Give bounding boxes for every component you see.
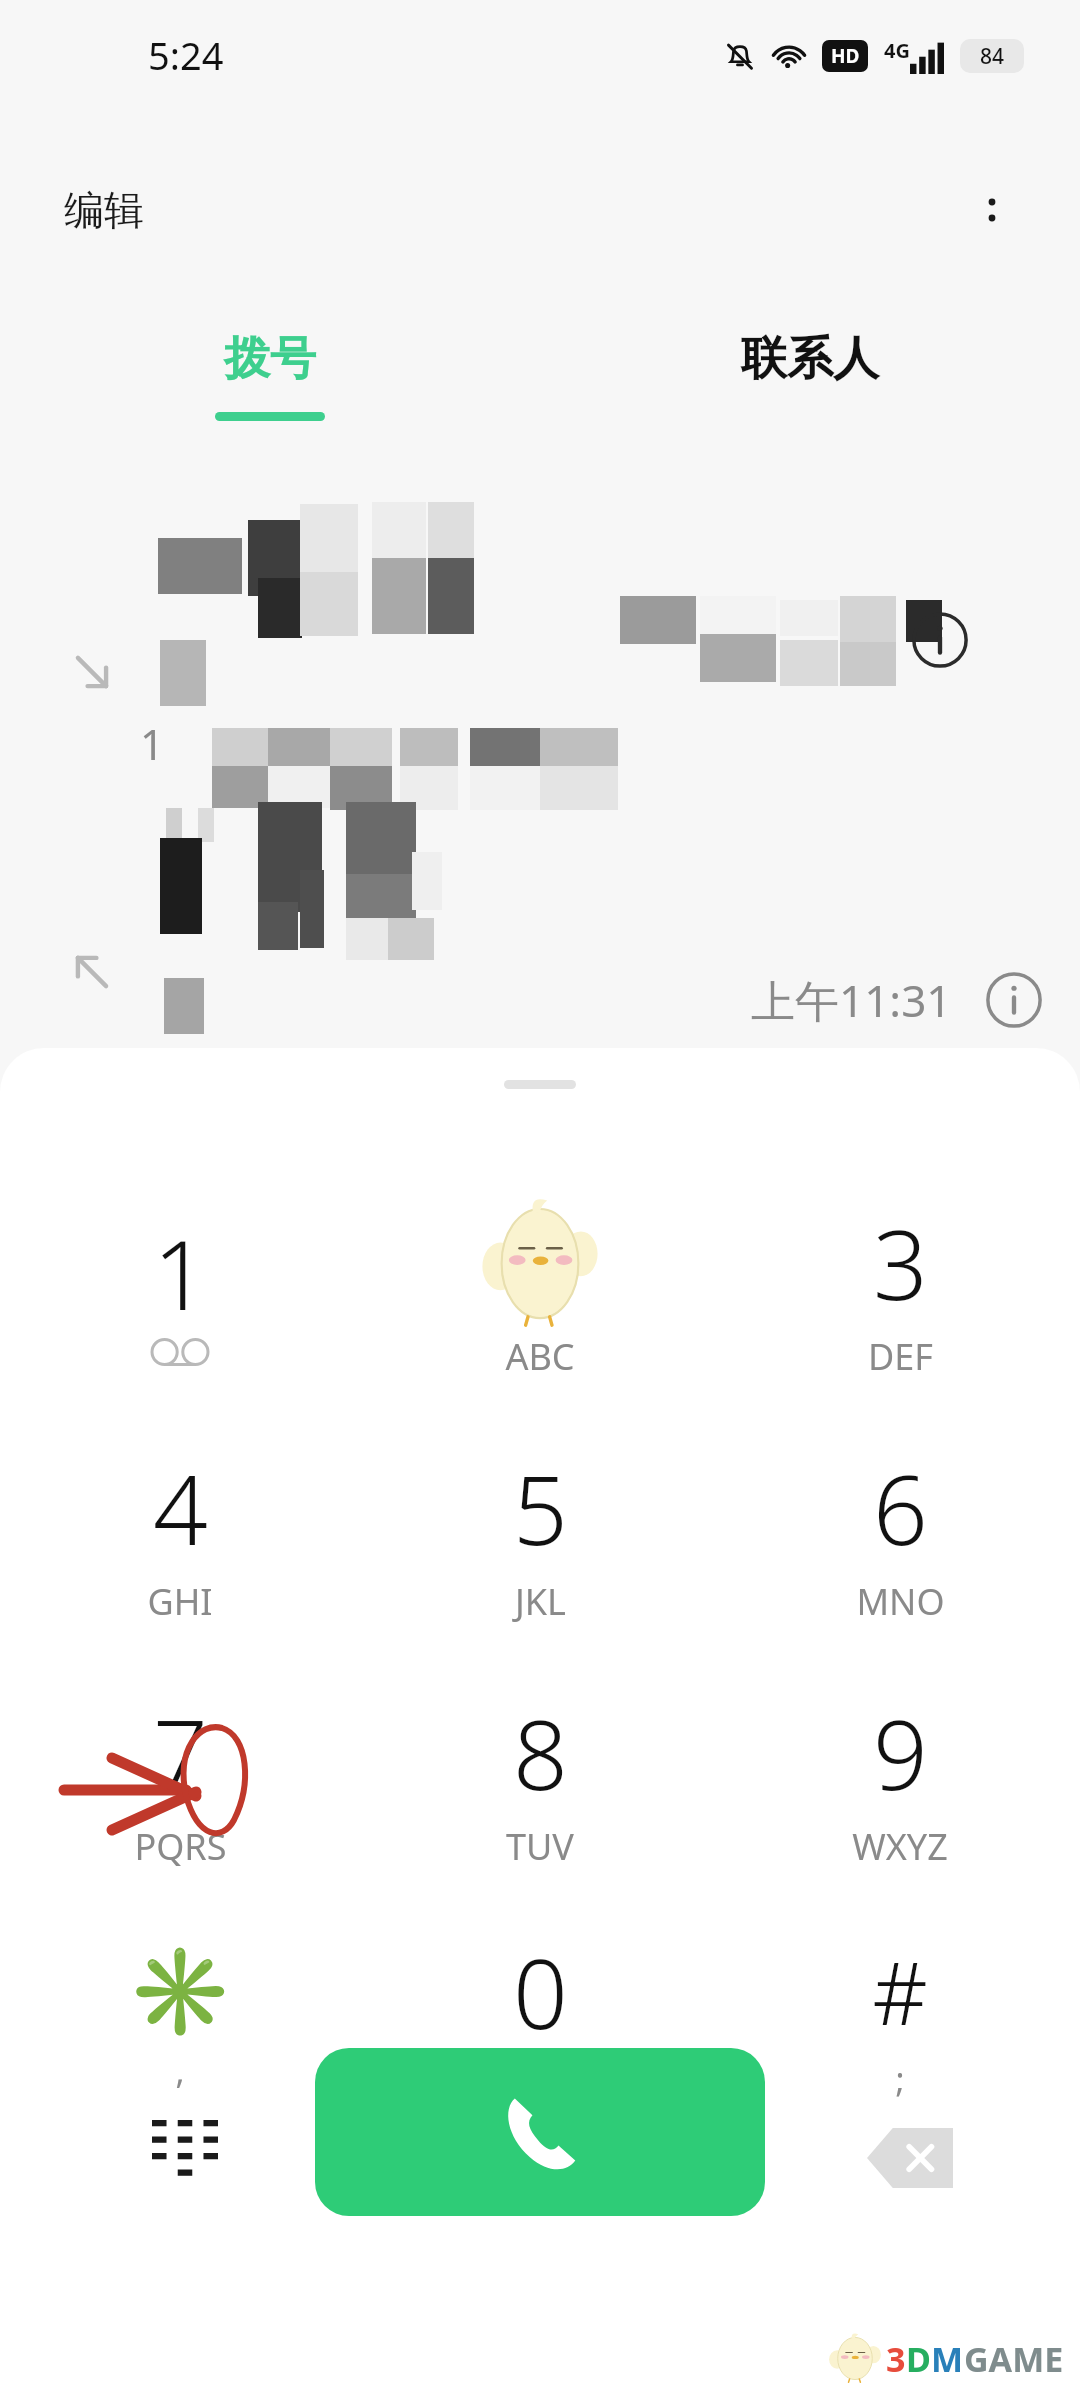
staticText: DEF (868, 1332, 933, 1381)
staticText: TUV (506, 1822, 574, 1871)
button[interactable]: Call (315, 2048, 765, 2216)
staticText: 1 (140, 715, 165, 772)
staticText: 8 (513, 1687, 568, 1818)
button[interactable]: 4 (0, 1411, 360, 1656)
staticText: 3 (873, 1197, 928, 1328)
button[interactable]: 联系人 (540, 330, 1080, 470)
staticText: 4 (153, 1442, 208, 1573)
staticText: 上午11:31 (751, 970, 952, 1030)
staticText: HD (831, 43, 860, 69)
staticText: 9 (873, 1687, 928, 1818)
staticText: 1 (153, 1207, 208, 1338)
button[interactable]: ✳ (0, 1901, 360, 2146)
staticText: 拨号 (224, 330, 316, 388)
staticText: M (931, 2336, 964, 2382)
staticText: 84 (980, 42, 1005, 71)
staticText: 联系人 (741, 330, 879, 388)
button[interactable]: 0 (360, 1901, 720, 2146)
button[interactable]: 5 (360, 1411, 720, 1656)
staticText: GHI (147, 1577, 213, 1626)
staticText: 5:24 (148, 29, 224, 81)
staticText: PQRS (134, 1822, 227, 1871)
button[interactable]: 1 (0, 1166, 360, 1411)
button[interactable]: 拨号 (0, 330, 540, 470)
button[interactable]: 8 (360, 1656, 720, 1901)
staticText: GAME (964, 2336, 1064, 2382)
staticText: 3 (886, 2336, 906, 2382)
staticText: 7 (153, 1687, 208, 1818)
staticText: , (175, 2048, 185, 2094)
staticText: 6 (873, 1442, 928, 1573)
button[interactable]: Call details (0, 500, 1080, 770)
button[interactable]: 2 (360, 1166, 720, 1411)
button[interactable]: 上午11:31 (0, 790, 1080, 1040)
button[interactable]: Backspace (850, 2098, 970, 2218)
button[interactable]: Call details (978, 964, 1050, 1036)
staticText: ABC (505, 1332, 575, 1381)
staticText: ✳ (126, 1941, 234, 2042)
staticText: 4G (884, 37, 910, 64)
button[interactable]: 6 (720, 1411, 1080, 1656)
staticText: MNO (856, 1577, 945, 1626)
button[interactable]: 编辑 (56, 177, 152, 243)
staticText: 编辑 (64, 185, 144, 235)
button[interactable]: Hide keypad (120, 2088, 250, 2218)
staticText: 2 (513, 1197, 568, 1328)
staticText: # (872, 1933, 928, 2050)
button[interactable]: 7 (0, 1656, 360, 1901)
button[interactable]: 3 (720, 1166, 1080, 1411)
staticText: D (906, 2336, 931, 2382)
button[interactable]: # (720, 1901, 1080, 2146)
button[interactable]: 9 (720, 1656, 1080, 1901)
staticText: JKL (515, 1577, 566, 1626)
button[interactable]: More options (956, 174, 1028, 246)
staticText: 0 (513, 1926, 568, 2057)
staticText: ; (895, 2056, 905, 2102)
staticText: 5 (513, 1442, 568, 1573)
button[interactable]: Call details (900, 600, 980, 680)
staticText: WXYZ (852, 1822, 948, 1871)
